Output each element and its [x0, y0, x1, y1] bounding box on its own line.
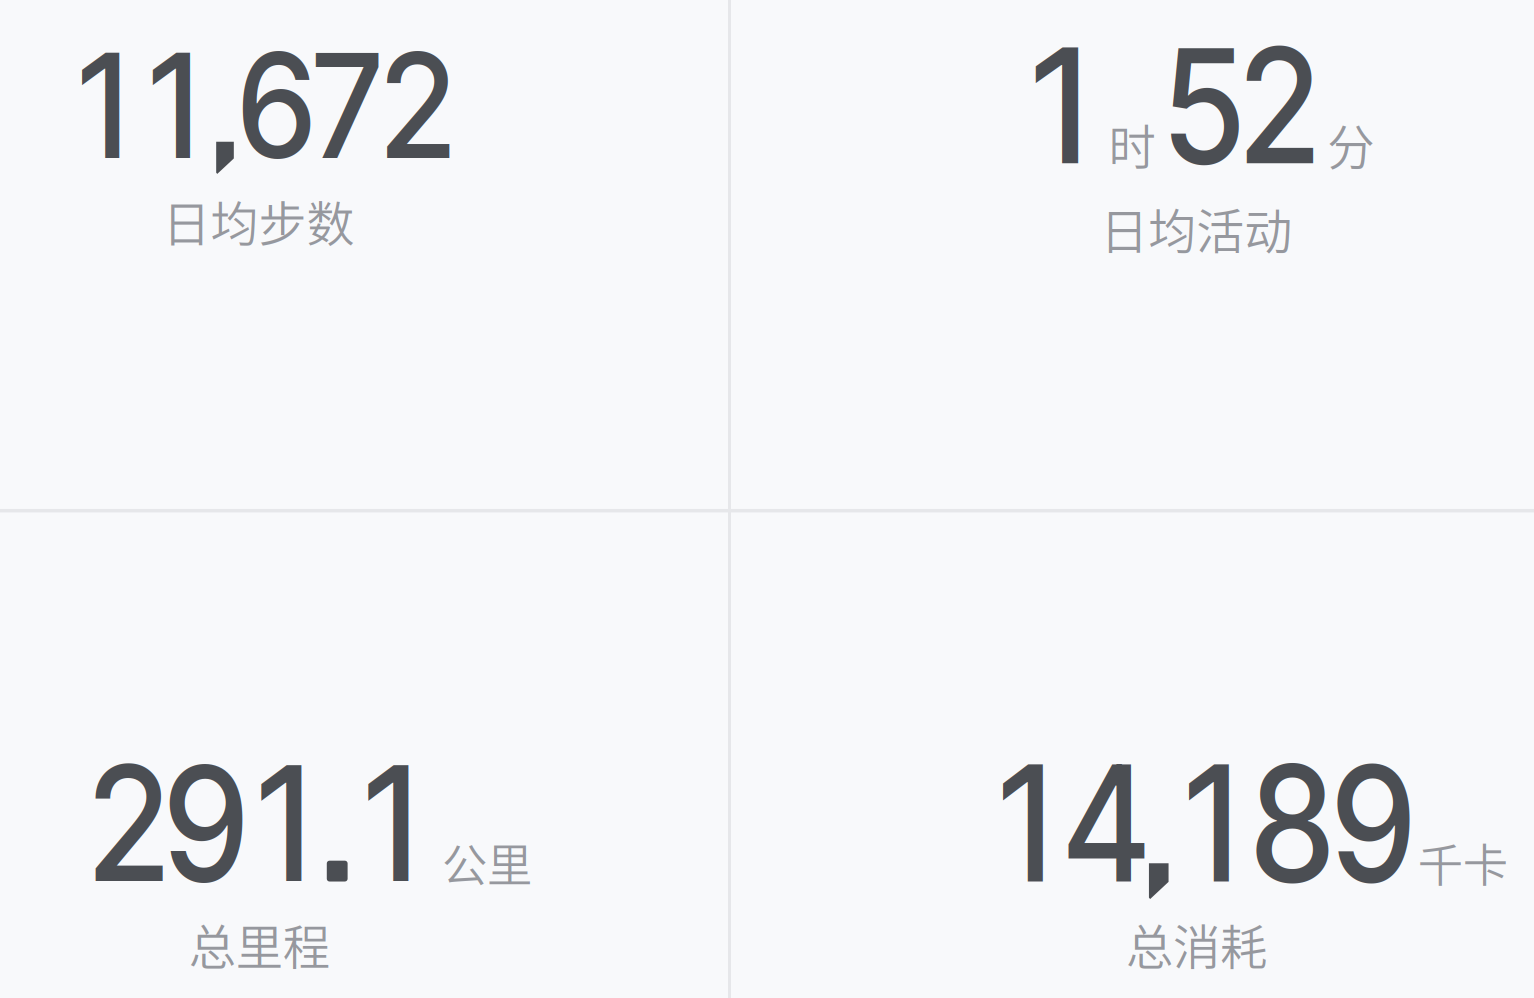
staticText: 1	[254, 727, 313, 919]
staticText: 8	[1245, 727, 1339, 920]
staticText: 1	[996, 727, 1055, 920]
staticText: 5	[1158, 10, 1249, 201]
staticText: 总消耗	[1126, 910, 1267, 978]
staticText: 1	[1030, 10, 1089, 201]
staticText: 1	[1182, 727, 1241, 920]
staticText: 1	[147, 19, 200, 193]
staticText: 9	[159, 727, 253, 919]
staticText: 公里	[442, 830, 532, 895]
staticText: 4	[1057, 727, 1155, 920]
staticText: 2	[1234, 10, 1324, 201]
staticText: 1	[76, 19, 129, 193]
staticText: 时	[1109, 110, 1156, 178]
staticText: 千卡	[1418, 830, 1508, 895]
staticText: 1	[361, 727, 420, 919]
staticText: 总里程	[189, 910, 330, 978]
button[interactable]: 总里程 291.1 公里	[0, 510, 729, 998]
staticText: 7	[309, 19, 385, 193]
staticText: 6	[234, 19, 319, 193]
button[interactable]: 总消耗 14,189 千卡	[729, 510, 1534, 998]
staticText: 2	[83, 727, 174, 919]
staticText: 2	[377, 19, 459, 193]
staticText: 9	[1326, 727, 1420, 920]
button[interactable]: 日均步数 11,672	[0, 0, 729, 510]
staticText: 日均活动	[1100, 193, 1292, 263]
staticText: 分	[1327, 110, 1374, 179]
staticText: 日均步数	[162, 186, 354, 255]
button[interactable]: 日均活动 1时52分	[729, 0, 1534, 510]
